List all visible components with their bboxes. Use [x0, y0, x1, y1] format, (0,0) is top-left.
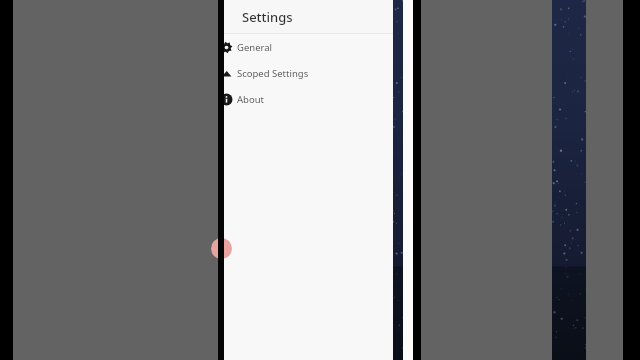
staticText: Scoped Settings — [237, 67, 309, 80]
staticText: About — [237, 93, 264, 106]
button[interactable]: About — [218, 86, 413, 112]
button[interactable]: Scoped Settings — [218, 60, 413, 86]
button[interactable]: Add — [211, 238, 232, 259]
staticText: General — [237, 41, 273, 54]
staticText: Settings — [242, 8, 293, 26]
button[interactable]: General — [218, 34, 413, 60]
